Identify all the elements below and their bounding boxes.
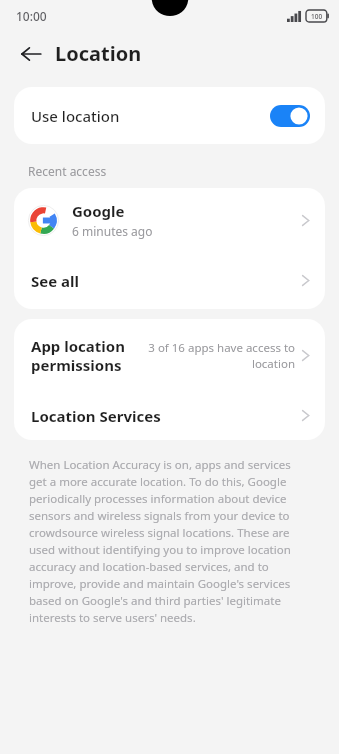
staticText: Use location [31,106,120,126]
staticText: 3 of 16 apps have access to location [131,340,295,371]
staticText: See all [31,271,301,291]
staticText: 10:00 [16,8,47,24]
staticText: Recent access [28,163,107,179]
staticText: Location [55,40,142,67]
button[interactable]: Google [14,188,325,252]
staticText: App location permissions [31,336,125,375]
button[interactable]: Back [17,40,45,68]
staticText: Location Services [31,406,301,426]
button[interactable]: App location permissions [14,319,325,391]
button[interactable]: Location Services [14,391,325,440]
button[interactable]: See all [14,252,325,309]
staticText: 6 minutes ago [72,223,153,239]
staticText: When Location Accuracy is on, apps and s… [29,457,310,625]
button[interactable]: Use location [14,87,325,144]
staticText: Google [72,201,125,221]
staticText: 100 [311,12,323,21]
